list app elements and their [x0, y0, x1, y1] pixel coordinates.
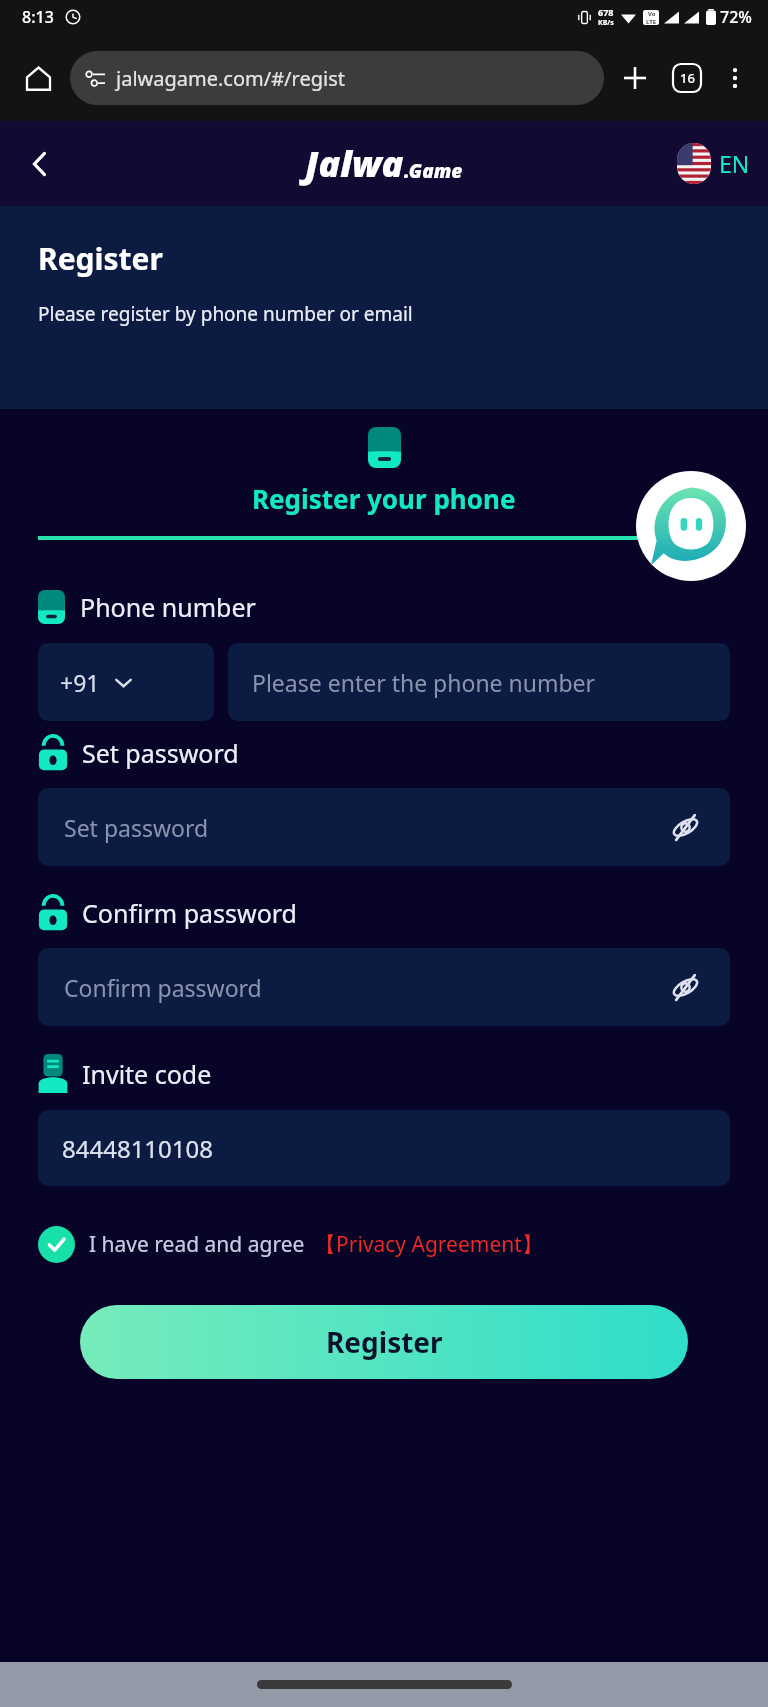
button[interactable]: 84448110108: [38, 1110, 730, 1186]
staticText: Vo: [648, 10, 656, 18]
staticText: Please register by phone number or email: [38, 301, 413, 327]
staticText: 72%: [720, 6, 752, 28]
button[interactable]: Confirm password: [38, 948, 730, 1026]
staticText: LTE: [646, 18, 657, 25]
button[interactable]: More options: [712, 55, 758, 101]
button[interactable]: Tabs: 16: [662, 53, 712, 103]
button[interactable]: EN: [673, 139, 754, 188]
staticText: .Game: [404, 158, 463, 184]
staticText: KB/s: [598, 18, 614, 28]
staticText: Please enter the phone number: [252, 667, 596, 698]
staticText: 678: [598, 6, 614, 18]
staticText: Register: [38, 238, 163, 279]
staticText: Set password: [82, 736, 239, 770]
staticText: Set password: [64, 812, 666, 843]
staticText: Jalwa: [305, 139, 404, 188]
button[interactable]: Register: [80, 1305, 688, 1379]
staticText: I have read and agree: [89, 1230, 305, 1259]
staticText: EN: [719, 148, 750, 179]
staticText: Phone number: [80, 590, 256, 624]
button[interactable]: Show password: [666, 968, 704, 1006]
button[interactable]: Register your phone: [0, 427, 768, 540]
button[interactable]: Please enter the phone number: [228, 643, 730, 721]
staticText: jalwagame.com/#/regist: [116, 65, 345, 92]
button[interactable]: Back: [12, 136, 68, 192]
button[interactable]: Home: [10, 50, 66, 106]
staticText: 84448110108: [62, 1132, 214, 1165]
staticText: Register your phone: [252, 481, 516, 516]
staticText: +91: [60, 667, 100, 698]
staticText: Confirm password: [82, 896, 297, 930]
button[interactable]: I have read and agree: [38, 1226, 543, 1263]
button[interactable]: Customer service chat: [636, 471, 746, 581]
staticText: 8:13: [22, 6, 54, 28]
staticText: Register: [326, 1323, 443, 1361]
button[interactable]: +91: [38, 643, 214, 721]
button[interactable]: Set password: [38, 788, 730, 866]
staticText: 【Privacy Agreement】: [315, 1230, 543, 1259]
staticText: Invite code: [82, 1057, 212, 1091]
staticText: 16: [680, 69, 695, 87]
staticText: Confirm password: [64, 972, 666, 1003]
button[interactable]: New tab: [610, 53, 660, 103]
button[interactable]: jalwagame.com/#/regist: [70, 51, 604, 105]
button[interactable]: Show password: [666, 808, 704, 846]
